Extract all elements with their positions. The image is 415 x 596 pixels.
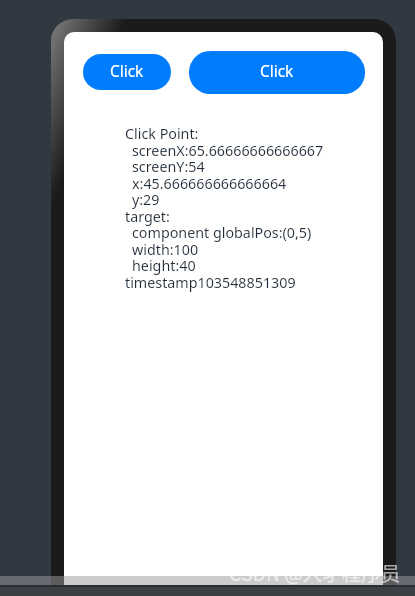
staticText: Click Point: xyxy=(125,124,199,143)
staticText: y:29 xyxy=(132,190,160,209)
button[interactable]: Click xyxy=(189,51,365,94)
staticText: width:100 xyxy=(132,240,199,259)
staticText: CSDN @人才程序员 xyxy=(229,558,401,586)
staticText: screenY:54 xyxy=(132,157,205,176)
staticText: screenX:65.66666666666667 xyxy=(132,141,324,160)
staticText: Click xyxy=(110,61,144,82)
staticText: height:40 xyxy=(132,256,196,275)
staticText: component globalPos:(0,5) xyxy=(132,223,312,242)
staticText: x:45.666666666666664 xyxy=(132,174,287,193)
staticText: Click xyxy=(260,61,294,82)
button[interactable]: Click xyxy=(83,54,171,90)
staticText: timestamp103548851309 xyxy=(125,273,296,292)
staticText: target: xyxy=(125,207,170,226)
